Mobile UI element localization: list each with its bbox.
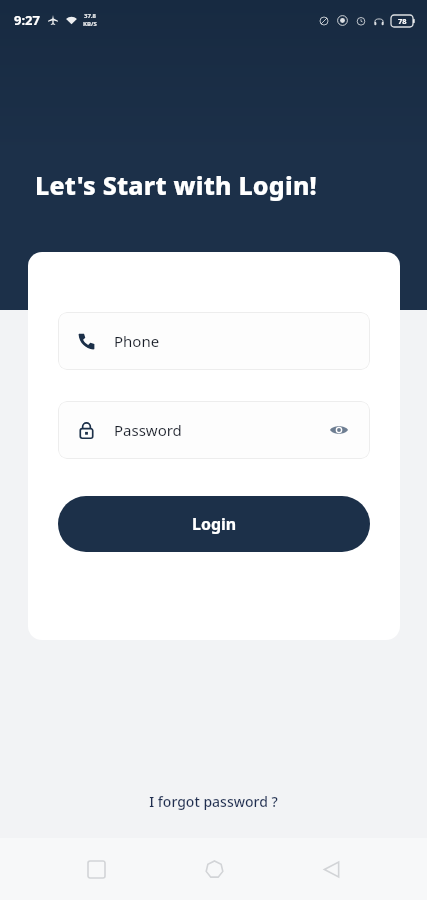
button[interactable]: Login (58, 496, 370, 552)
staticText: 78 (398, 16, 407, 26)
button[interactable]: Phone (58, 312, 370, 370)
button[interactable]: Show password (326, 417, 352, 443)
staticText: 37.8 (84, 12, 96, 20)
staticText: Phone (114, 331, 160, 351)
staticText: 9:27 (14, 11, 40, 29)
staticText: KB/S (83, 20, 97, 28)
staticText: Login (192, 513, 237, 535)
staticText: I forgot password ? (149, 792, 278, 811)
button[interactable]: I forgot password ? (137, 788, 290, 815)
button[interactable]: Password (58, 401, 370, 459)
staticText: Let's Start with Login! (35, 168, 317, 202)
button[interactable]: Recent apps (74, 847, 118, 891)
button[interactable]: Back (309, 847, 353, 891)
button[interactable]: Home (192, 847, 236, 891)
staticText: Password (114, 420, 182, 440)
